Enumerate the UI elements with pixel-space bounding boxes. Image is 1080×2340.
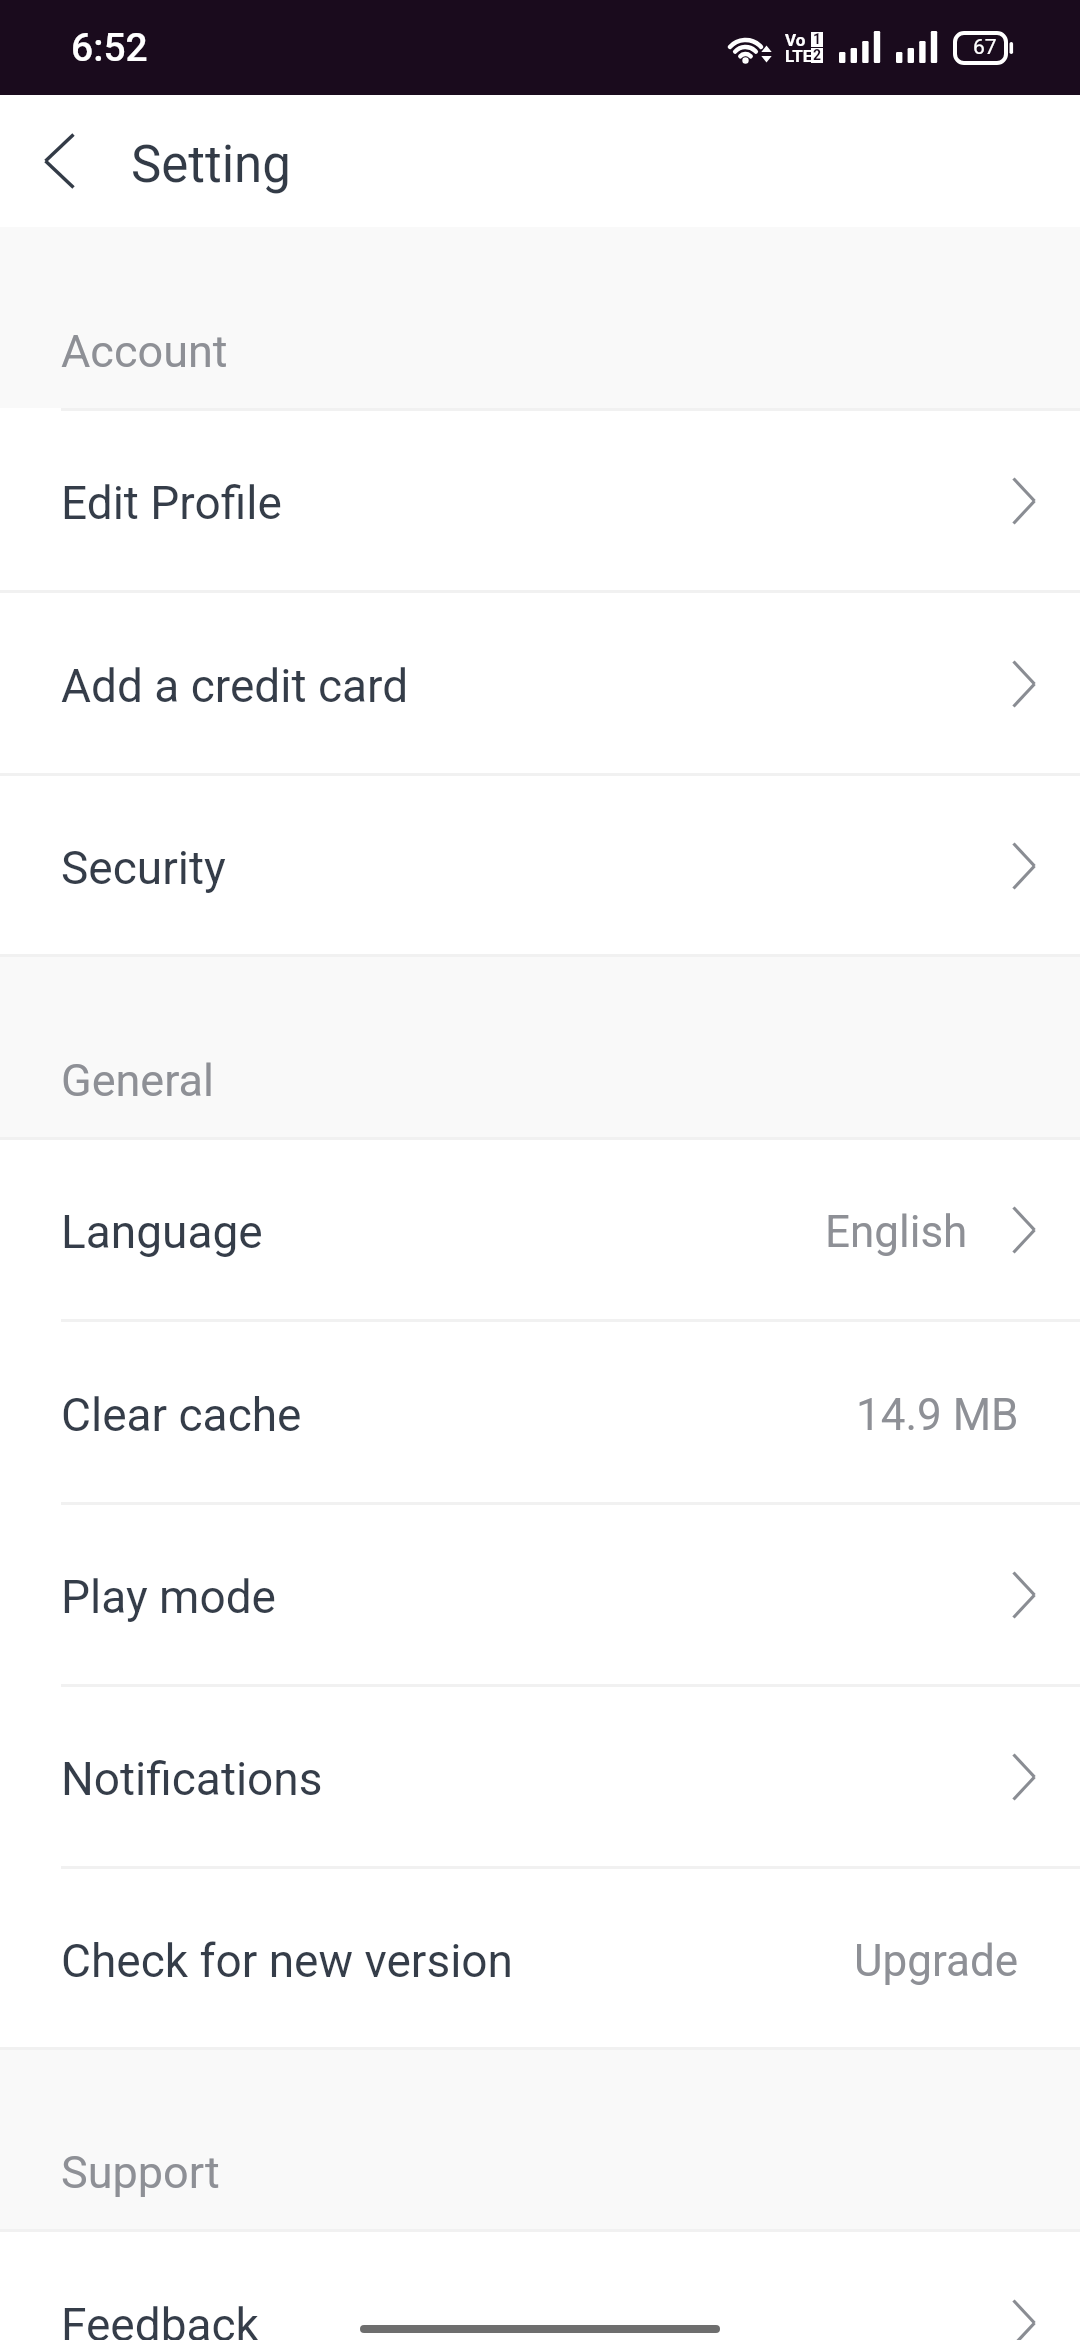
button[interactable]: Back <box>0 95 118 227</box>
staticText: General <box>61 1054 215 1107</box>
button[interactable]: Play mode <box>0 1505 1080 1684</box>
staticText: 6:52 <box>71 25 148 71</box>
button[interactable]: Clear cache <box>0 1322 1080 1502</box>
button[interactable]: Security <box>0 776 1080 954</box>
staticText: Add a credit card <box>61 659 409 713</box>
staticText: Upgrade <box>854 1935 1019 1987</box>
staticText: Feedback <box>61 2298 259 2340</box>
staticText: Vo <box>785 30 806 50</box>
staticText: 67 <box>973 35 997 60</box>
staticText: Setting <box>131 135 291 195</box>
button[interactable]: Feedback <box>0 2232 1080 2340</box>
staticText: 14.9 MB <box>856 1389 1019 1441</box>
staticText: English <box>825 1206 968 1258</box>
button[interactable]: Notifications <box>0 1687 1080 1866</box>
staticText: Support <box>61 2146 220 2199</box>
staticText: Notifications <box>61 1752 323 1806</box>
staticText: LTE <box>785 46 813 66</box>
button[interactable]: Add a credit card <box>0 593 1080 773</box>
button[interactable]: Language <box>0 1140 1080 1319</box>
staticText: Play mode <box>61 1570 276 1624</box>
staticText: Edit Profile <box>61 476 282 530</box>
staticText: Clear cache <box>61 1388 302 1442</box>
staticText: Security <box>61 841 226 895</box>
staticText: 1 <box>813 31 822 46</box>
button[interactable]: Edit Profile <box>0 411 1080 590</box>
staticText: Account <box>61 325 228 378</box>
staticText: Language <box>61 1205 263 1259</box>
staticText: 2 <box>813 47 822 62</box>
button[interactable]: Check for new version <box>0 1869 1080 2047</box>
staticText: Check for new version <box>61 1934 514 1988</box>
